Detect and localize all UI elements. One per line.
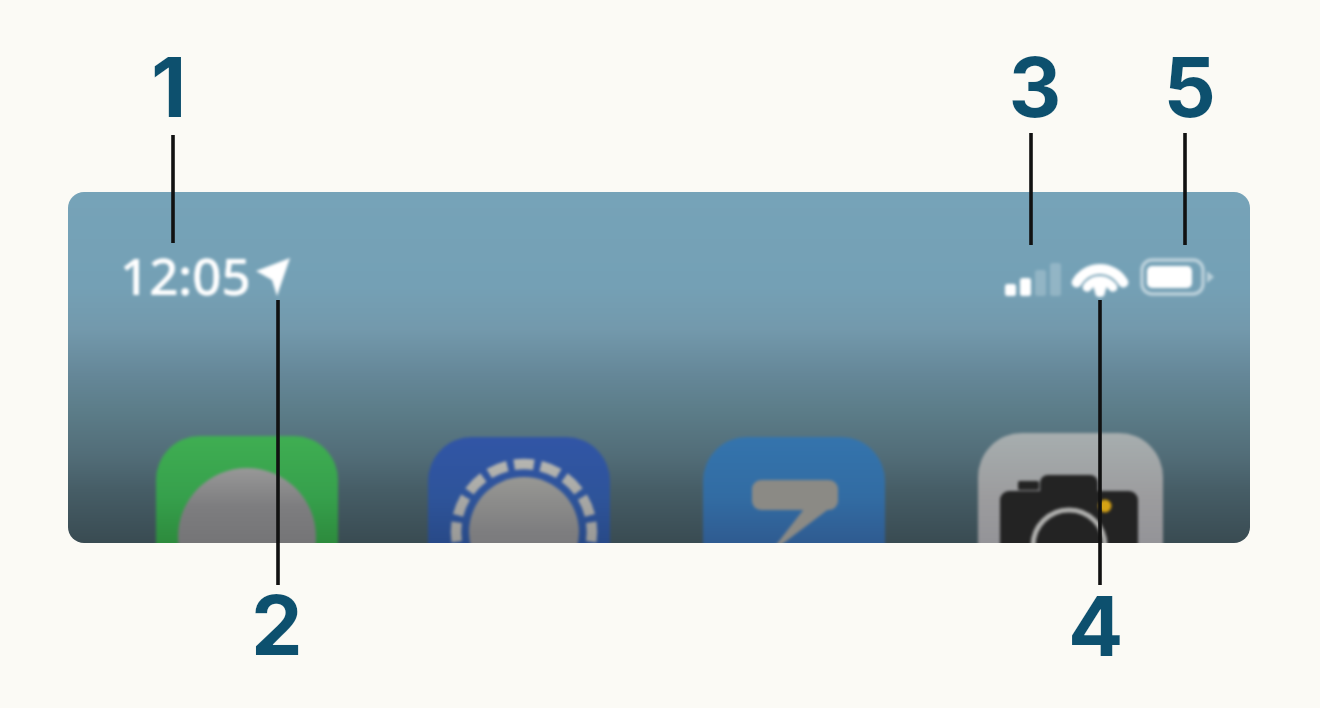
button[interactable] — [0, 0, 1320, 708]
